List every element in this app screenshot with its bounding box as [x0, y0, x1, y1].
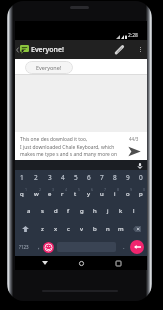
staticText: 8 — [113, 173, 117, 182]
button[interactable]: 8 — [108, 170, 121, 184]
button[interactable]: r — [56, 184, 69, 202]
staticText: t — [74, 190, 77, 198]
staticText: 4 — [61, 173, 65, 182]
button[interactable]: , — [35, 238, 43, 256]
staticText: w — [34, 190, 39, 198]
button[interactable]: m — [114, 220, 127, 238]
staticText: 9 — [130, 187, 133, 192]
staticText: y — [87, 190, 91, 198]
button[interactable]: f — [62, 202, 75, 220]
staticText: 1 — [25, 187, 28, 192]
staticText: 4 — [65, 187, 68, 192]
button[interactable]: 3 — [43, 170, 56, 184]
button[interactable]: Home — [74, 256, 88, 270]
button[interactable]: v — [75, 220, 88, 238]
staticText: u — [100, 190, 104, 198]
button[interactable]: l — [127, 202, 140, 220]
staticText: n — [106, 225, 110, 233]
staticText: 44/3 — [129, 136, 139, 142]
staticText: a — [27, 207, 31, 215]
button[interactable]: s — [36, 202, 49, 220]
staticText: r — [61, 190, 64, 198]
button[interactable]: x — [49, 220, 62, 238]
staticText: g — [80, 207, 84, 215]
staticText: i — [114, 190, 116, 198]
button[interactable]: b — [88, 220, 101, 238]
staticText: This one des download it too, I just dow… — [20, 136, 121, 157]
staticText: q — [20, 190, 24, 198]
button[interactable]: y — [82, 184, 95, 202]
button[interactable]: 6 — [82, 170, 95, 184]
button[interactable]: j — [101, 202, 114, 220]
staticText: f — [67, 207, 70, 215]
staticText: v — [80, 225, 84, 233]
staticText: b — [93, 225, 97, 233]
staticText: 1 — [20, 173, 24, 182]
staticText: d — [54, 207, 58, 215]
button[interactable]: Attach — [104, 40, 134, 59]
button[interactable]: Back — [38, 256, 52, 270]
staticText: z — [41, 225, 44, 233]
staticText: s — [41, 207, 44, 215]
button[interactable]: Enter — [130, 240, 144, 254]
button[interactable]: e — [43, 184, 56, 202]
button[interactable]: p — [134, 184, 147, 202]
staticText: 0 — [139, 173, 143, 182]
staticText: 7 — [100, 173, 104, 182]
button[interactable]: Voice input — [135, 161, 144, 170]
staticText: 6 — [87, 173, 91, 182]
button[interactable]: h — [88, 202, 101, 220]
staticText: k — [119, 207, 123, 215]
button[interactable]: Send — [121, 142, 147, 160]
staticText: p — [139, 190, 143, 198]
button[interactable]: i — [108, 184, 121, 202]
staticText: 5 — [74, 173, 78, 182]
button[interactable]: w — [29, 184, 43, 202]
button[interactable]: 5 — [69, 170, 82, 184]
button[interactable]: u — [95, 184, 108, 202]
button[interactable]: Backspace — [127, 220, 147, 238]
button[interactable]: 0 — [134, 170, 147, 184]
staticText: h — [93, 207, 97, 215]
staticText: 5 — [78, 187, 81, 192]
staticText: 2:28 — [128, 32, 138, 39]
button[interactable]: Everyone! — [25, 61, 73, 74]
button[interactable]: Emoji — [43, 242, 54, 253]
button[interactable]: d — [49, 202, 62, 220]
button[interactable]: ?123 — [19, 238, 29, 256]
button[interactable]: c — [62, 220, 75, 238]
staticText: 7 — [104, 187, 107, 192]
button[interactable]: n — [101, 220, 114, 238]
staticText: c — [67, 225, 70, 233]
staticText: m — [118, 225, 124, 233]
staticText: 8 — [117, 187, 120, 192]
button[interactable]: Navigate up — [15, 40, 20, 59]
button[interactable]: Recent apps — [111, 256, 125, 270]
button[interactable]: g — [75, 202, 88, 220]
staticText: j — [107, 207, 109, 215]
button[interactable]: Shift — [15, 220, 35, 238]
staticText: 6 — [91, 187, 94, 192]
button[interactable]: . — [120, 238, 128, 256]
staticText: 3 — [52, 187, 55, 192]
button[interactable]: More options — [134, 40, 146, 59]
staticText: e — [48, 190, 52, 198]
button[interactable]: 4 — [56, 170, 69, 184]
button[interactable]: 7 — [95, 170, 108, 184]
staticText: o — [126, 190, 130, 198]
button[interactable]: a — [22, 202, 36, 220]
button[interactable]: z — [35, 220, 49, 238]
button[interactable]: q — [15, 184, 29, 202]
button[interactable]: t — [69, 184, 82, 202]
button[interactable]: k — [114, 202, 127, 220]
staticText: Everyone! — [36, 64, 62, 71]
staticText: 9 — [126, 173, 130, 182]
staticText: . — [123, 243, 125, 251]
staticText: l — [133, 207, 135, 215]
button[interactable]: 2 — [29, 170, 43, 184]
button[interactable]: 1 — [15, 170, 29, 184]
button[interactable]: 9 — [121, 170, 134, 184]
staticText: x — [54, 225, 58, 233]
button[interactable]: o — [121, 184, 134, 202]
